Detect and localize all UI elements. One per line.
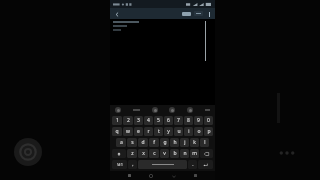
button[interactable]: s xyxy=(127,138,137,147)
staticText: j xyxy=(184,139,186,146)
staticText: c xyxy=(153,150,156,157)
button[interactable]: Hide keyboard xyxy=(171,173,177,179)
button[interactable]: h xyxy=(170,138,179,147)
button[interactable]: e xyxy=(134,127,143,136)
button[interactable]: 4 xyxy=(144,116,153,125)
button[interactable]: n xyxy=(180,149,189,158)
staticText: i xyxy=(188,128,190,135)
button[interactable]: i xyxy=(184,127,193,136)
staticText: n xyxy=(183,150,187,157)
staticText: m xyxy=(192,150,197,157)
staticText: a xyxy=(120,139,123,146)
staticText: 2 xyxy=(127,117,130,124)
button[interactable]: q xyxy=(112,127,122,136)
staticText: l xyxy=(204,139,206,146)
button[interactable]: o xyxy=(194,127,203,136)
button[interactable]: d xyxy=(138,138,148,147)
staticText: b xyxy=(173,150,177,157)
button[interactable]: 0 xyxy=(204,116,213,125)
button[interactable]: More xyxy=(274,148,300,158)
button[interactable]: z xyxy=(127,149,137,158)
staticText: p xyxy=(207,128,211,135)
button[interactable] xyxy=(182,12,191,16)
staticText: 1 xyxy=(116,117,119,124)
button[interactable]: t xyxy=(154,127,163,136)
staticText: 6 xyxy=(167,117,170,124)
button[interactable]: 8 xyxy=(184,116,193,125)
button[interactable]: Shift xyxy=(112,149,126,158)
staticText: r xyxy=(147,128,150,135)
button[interactable]: Recents xyxy=(127,173,132,178)
button[interactable]: k xyxy=(190,138,199,147)
button[interactable]: j xyxy=(180,138,189,147)
button[interactable]: . xyxy=(188,160,197,169)
button[interactable]: 3 xyxy=(134,116,143,125)
staticText: e xyxy=(137,128,140,135)
button[interactable]: a xyxy=(116,138,126,147)
staticText: k xyxy=(193,139,196,146)
button[interactable]: Backspace xyxy=(200,149,213,158)
staticText: t xyxy=(158,128,160,135)
button[interactable]: b xyxy=(170,149,179,158)
staticText: 4 xyxy=(147,117,150,124)
button[interactable]: Overflow menu xyxy=(206,11,212,17)
button[interactable]: 9 xyxy=(194,116,203,125)
button[interactable]: g xyxy=(160,138,169,147)
button[interactable]: 2 xyxy=(123,116,133,125)
button[interactable]: Settings xyxy=(152,107,158,113)
button[interactable]: Switch keyboard xyxy=(193,173,198,178)
staticText: 9 xyxy=(197,117,200,124)
button[interactable]: c xyxy=(149,149,159,158)
button[interactable]: v xyxy=(160,149,169,158)
button[interactable]: p xyxy=(204,127,213,136)
staticText: y xyxy=(167,128,170,135)
staticText: 8 xyxy=(187,117,190,124)
staticText: f xyxy=(153,139,155,146)
staticText: s xyxy=(131,139,134,146)
button[interactable]: r xyxy=(144,127,153,136)
button[interactable]: u xyxy=(174,127,183,136)
staticText: w xyxy=(126,128,130,135)
staticText: 0 xyxy=(207,117,210,124)
button[interactable]: Enter xyxy=(198,160,213,169)
staticText: u xyxy=(177,128,181,135)
button[interactable]: , xyxy=(128,160,137,169)
button[interactable]: y xyxy=(164,127,173,136)
button[interactable]: 7 xyxy=(174,116,183,125)
staticText: h xyxy=(173,139,177,146)
staticText: q xyxy=(115,128,119,135)
staticText: 3 xyxy=(137,117,140,124)
button[interactable]: Space xyxy=(138,160,187,169)
staticText: g xyxy=(163,139,167,146)
staticText: 7 xyxy=(177,117,180,124)
button[interactable]: Sticker xyxy=(115,107,121,113)
button[interactable]: !#1 xyxy=(112,160,127,169)
staticText: d xyxy=(141,139,145,146)
staticText: o xyxy=(197,128,201,135)
button[interactable]: l xyxy=(200,138,209,147)
button[interactable]: w xyxy=(123,127,133,136)
staticText: , xyxy=(132,161,134,168)
staticText: x xyxy=(142,150,145,157)
button[interactable]: f xyxy=(149,138,159,147)
staticText: !#1 xyxy=(117,162,123,167)
staticText: z xyxy=(131,150,134,157)
staticText: . xyxy=(192,161,194,168)
button[interactable]: Action xyxy=(194,11,203,16)
button[interactable]: 5 xyxy=(154,116,163,125)
button[interactable]: m xyxy=(190,149,199,158)
staticText: 5 xyxy=(157,117,160,124)
button[interactable]: Emoji xyxy=(169,107,175,113)
button[interactable]: Back xyxy=(113,10,121,18)
button[interactable]: 1 xyxy=(112,116,122,125)
button[interactable]: 6 xyxy=(164,116,173,125)
staticText: v xyxy=(163,150,166,157)
button[interactable]: x xyxy=(138,149,148,158)
button[interactable]: Home xyxy=(148,173,154,179)
button[interactable]: Settings xyxy=(14,138,42,166)
button[interactable]: Voice xyxy=(187,107,193,113)
